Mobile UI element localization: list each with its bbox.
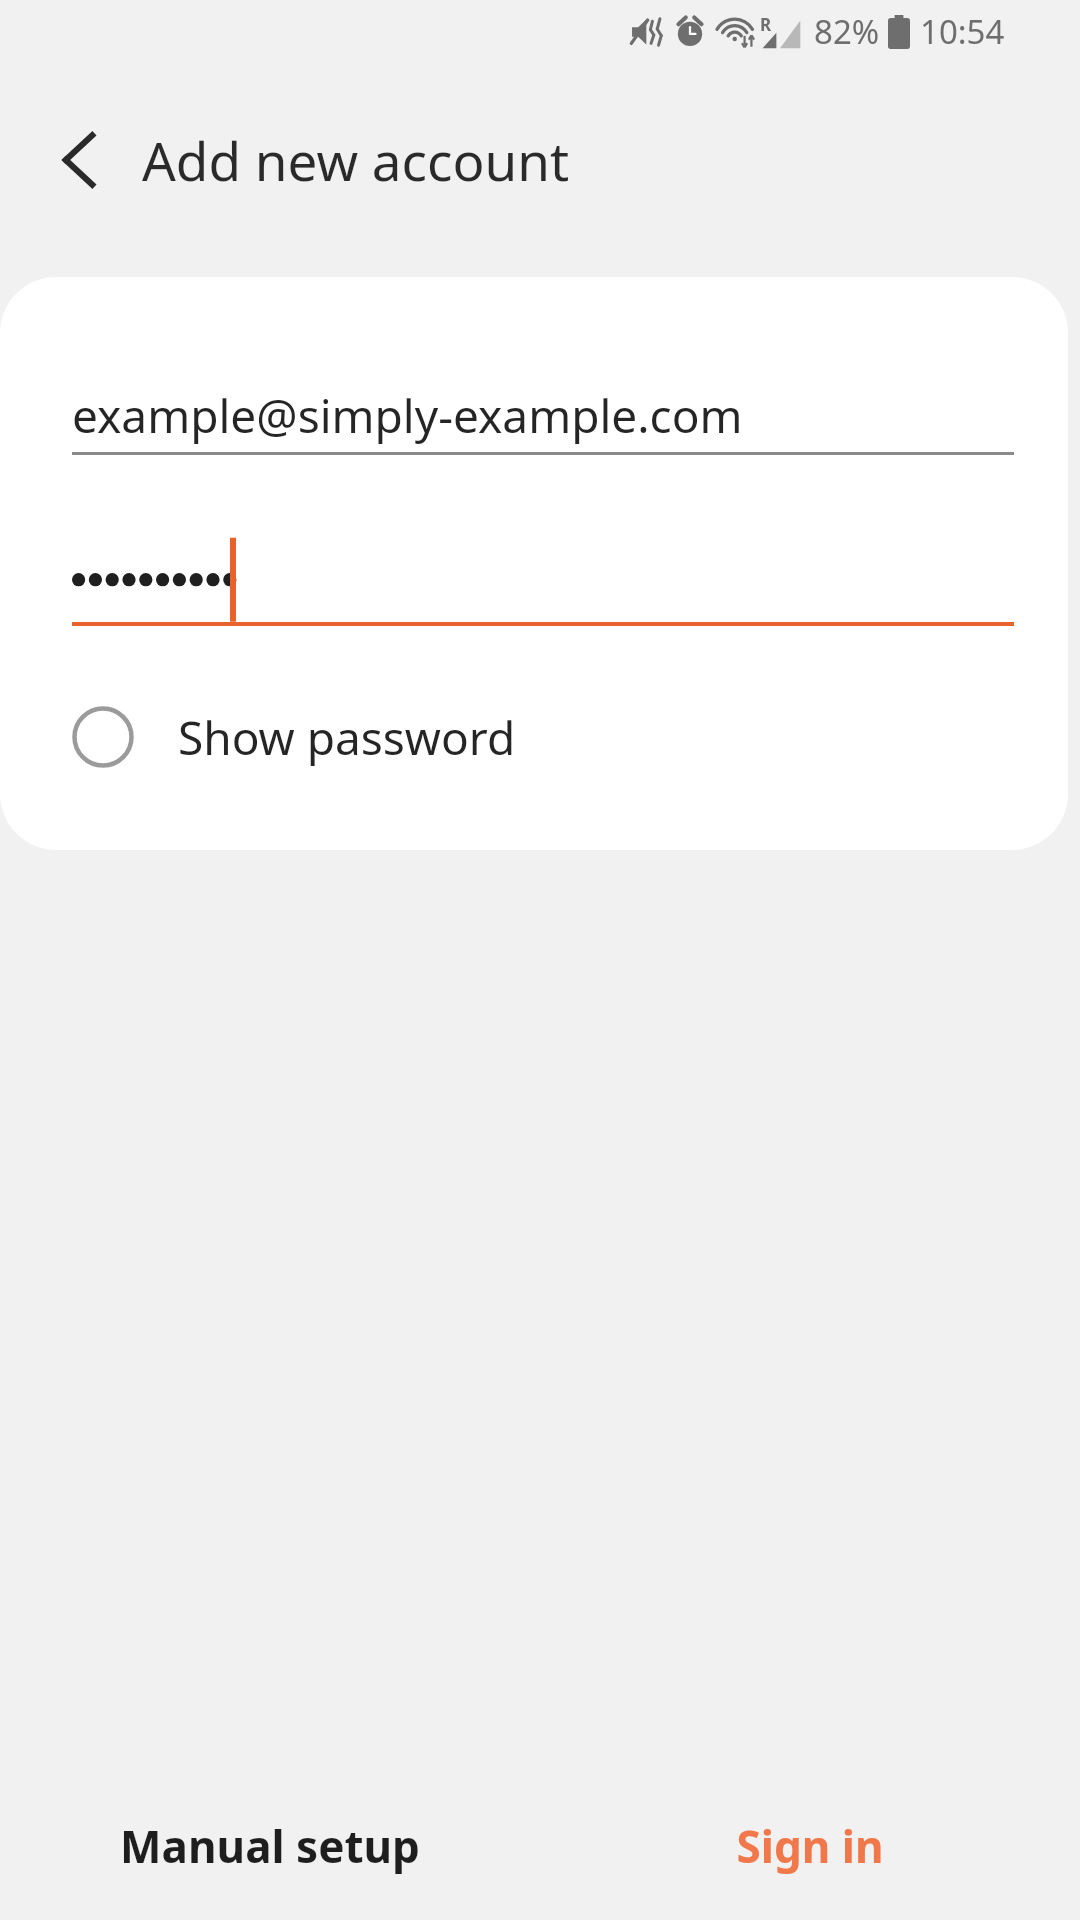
button[interactable]: Sign in: [540, 1786, 1080, 1920]
staticText: R: [760, 13, 772, 36]
staticText: 10:54: [920, 9, 1005, 54]
staticText: 82%: [814, 9, 880, 54]
button[interactable]: Manual setup: [0, 1786, 540, 1920]
staticText: Show password: [178, 706, 516, 769]
staticText: example@simply-example.com: [72, 384, 743, 447]
button[interactable]: Back: [28, 110, 128, 210]
button[interactable]: Show password: [0, 677, 1068, 797]
button[interactable]: [72, 535, 1012, 621]
button[interactable]: example@simply-example.com: [72, 375, 1012, 455]
staticText: Manual setup: [120, 1816, 420, 1876]
staticText: Add new account: [142, 124, 570, 196]
staticText: Sign in: [736, 1816, 884, 1876]
